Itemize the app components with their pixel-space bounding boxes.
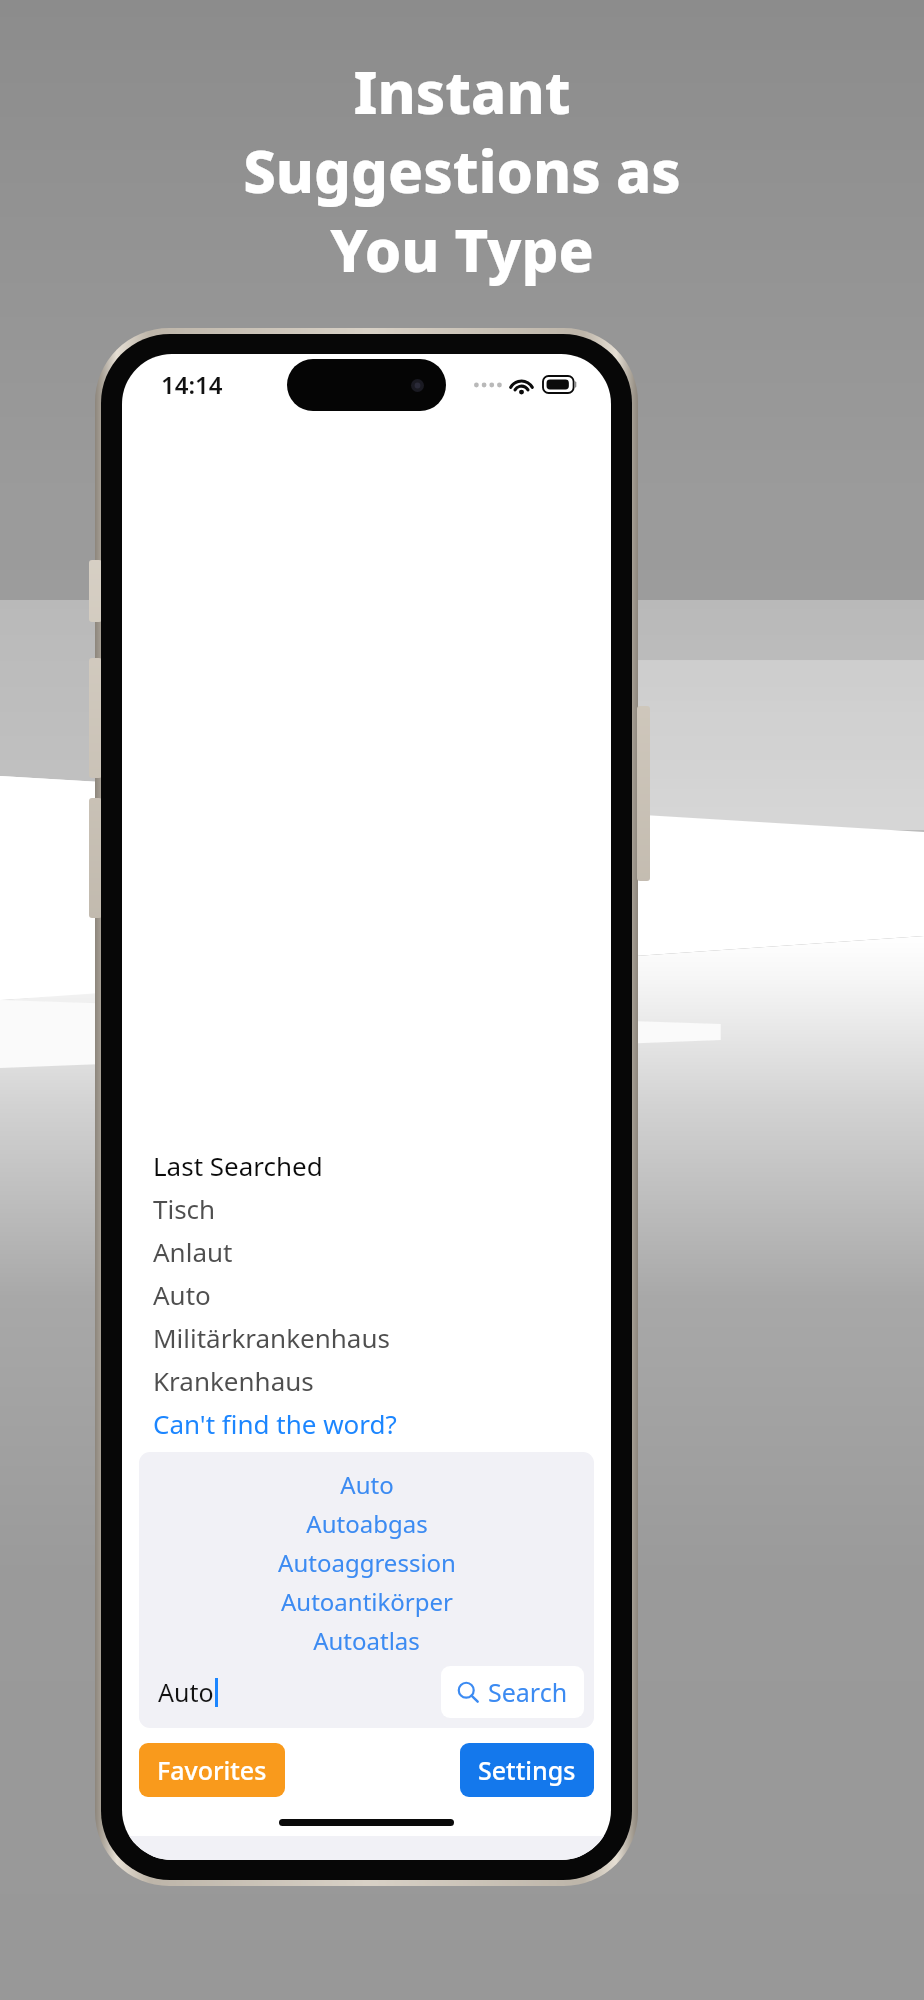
staticText: 14:14 bbox=[161, 368, 223, 401]
button[interactable]: Anlaut bbox=[153, 1234, 611, 1277]
staticText: Search bbox=[488, 1675, 568, 1709]
button[interactable]: Militärkrankenhaus bbox=[153, 1320, 611, 1363]
staticText: Instant bbox=[353, 52, 571, 131]
staticText: Auto bbox=[158, 1675, 214, 1709]
staticText: Settings bbox=[478, 1753, 576, 1787]
button[interactable]: Krankenhaus bbox=[153, 1363, 611, 1406]
button[interactable]: Autoaggression bbox=[139, 1543, 594, 1582]
staticText: Auto bbox=[340, 1468, 394, 1501]
staticText: Favorites bbox=[157, 1753, 267, 1787]
button[interactable]: Auto bbox=[153, 1277, 611, 1320]
button[interactable]: Last Searched bbox=[153, 1148, 323, 1183]
button[interactable]: Autoantikörper bbox=[139, 1582, 594, 1621]
staticText: You Type bbox=[330, 210, 594, 289]
button[interactable]: Auto bbox=[139, 1465, 594, 1504]
button[interactable]: Autoatlas bbox=[139, 1621, 594, 1660]
button[interactable]: Auto bbox=[158, 1675, 441, 1709]
staticText: Autoatlas bbox=[313, 1624, 420, 1657]
button[interactable]: Favorites bbox=[139, 1743, 285, 1797]
staticText: Autoaggression bbox=[278, 1546, 456, 1579]
button[interactable]: Search bbox=[441, 1666, 584, 1718]
button[interactable]: Autoabgas bbox=[139, 1504, 594, 1543]
staticText: Autoabgas bbox=[306, 1507, 428, 1540]
button[interactable]: Tisch bbox=[153, 1191, 611, 1234]
staticText: Suggestions as bbox=[243, 131, 681, 210]
staticText: Autoantikörper bbox=[281, 1585, 453, 1618]
button[interactable]: Can't find the word? bbox=[153, 1406, 397, 1441]
button[interactable]: Settings bbox=[460, 1743, 594, 1797]
